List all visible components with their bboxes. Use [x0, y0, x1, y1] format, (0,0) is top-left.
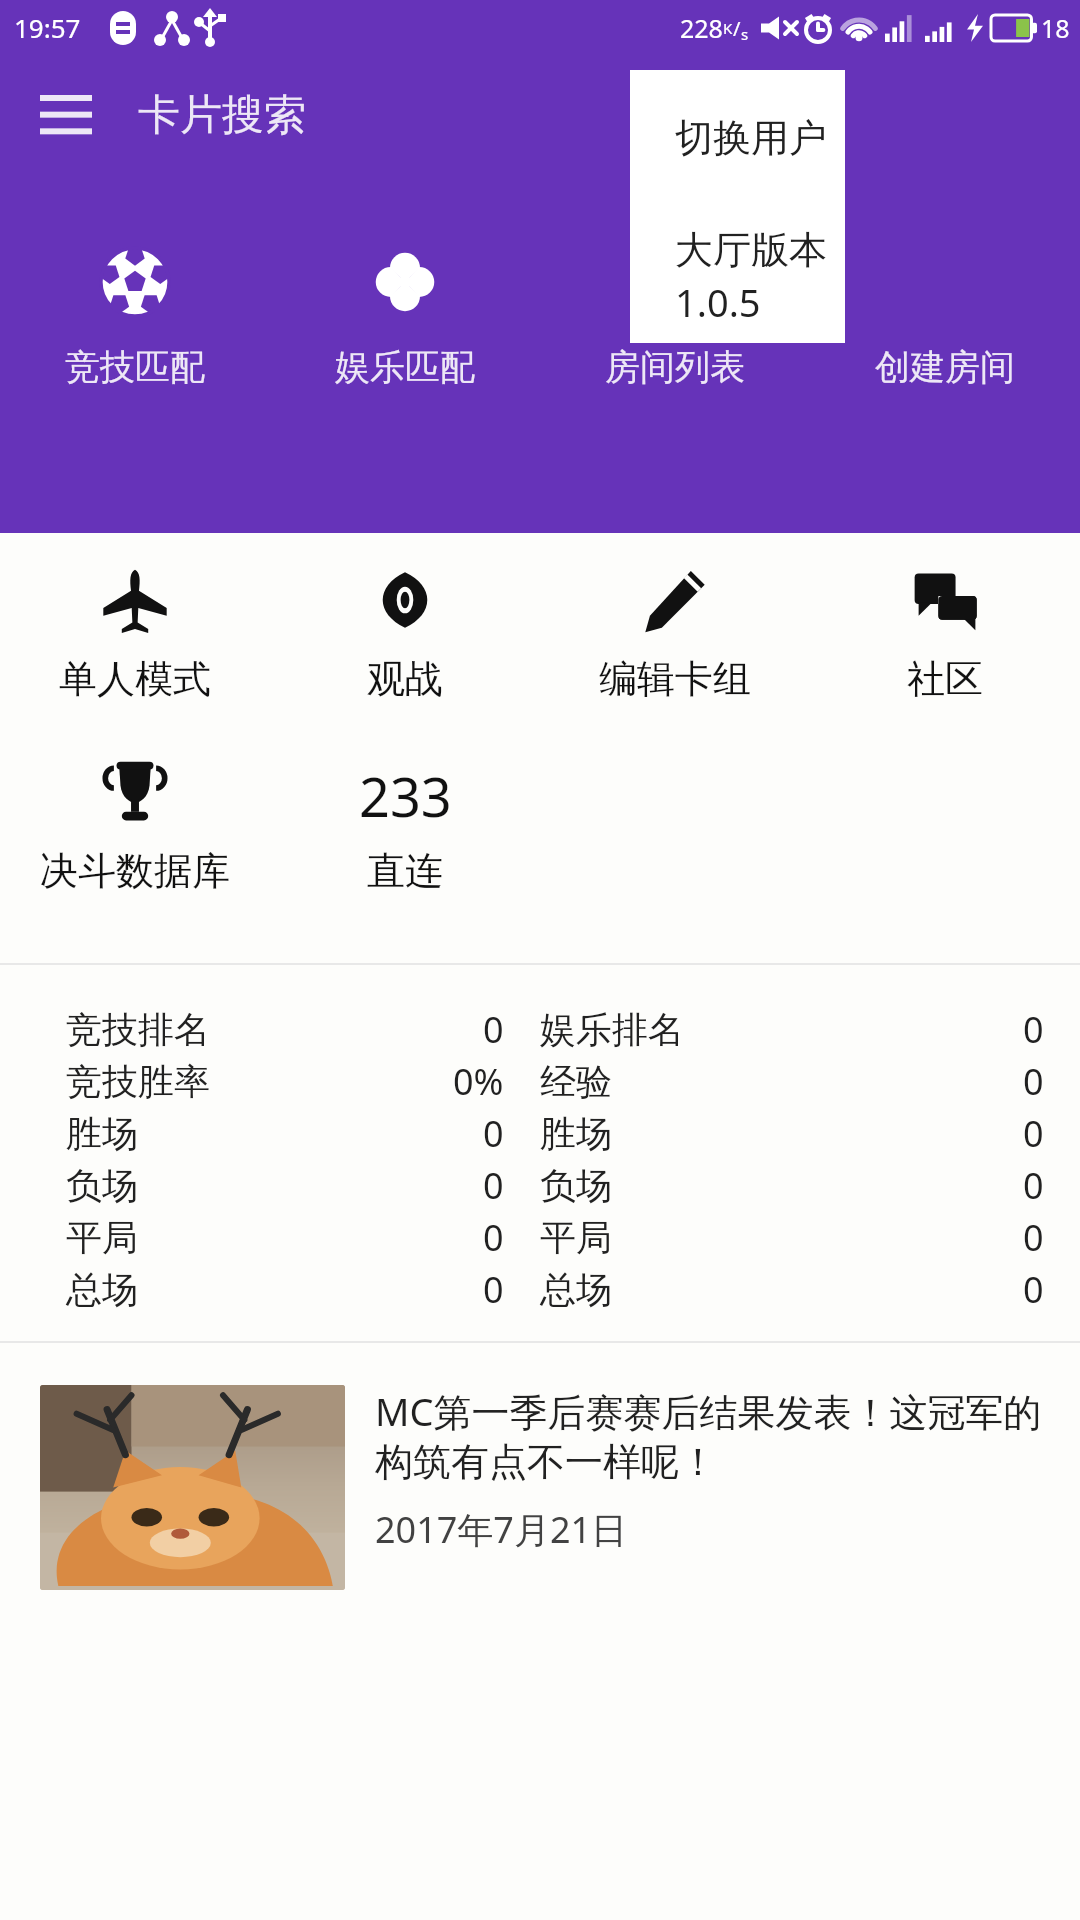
button[interactable]: 切换用户 [630, 70, 845, 206]
staticText: 编辑卡组 [599, 655, 751, 703]
staticText: 胜场 [66, 1111, 138, 1156]
staticText: 0 [483, 1161, 504, 1210]
staticText: 竞技排名 [66, 1007, 210, 1052]
button[interactable]: 编辑卡组 [540, 567, 810, 703]
staticText: 直连 [367, 847, 443, 895]
button[interactable]: 创建房间 [810, 241, 1080, 393]
staticText: 切换用户 [675, 114, 827, 162]
staticText: 娱乐匹配 [335, 345, 475, 389]
staticText: 平局 [540, 1215, 612, 1260]
staticText: 竞技胜率 [66, 1059, 210, 1104]
staticText: 0 [1023, 1265, 1044, 1314]
staticText: MC第一季后赛赛后结果发表！这冠军的构筑有点不一样呢！ [375, 1385, 1052, 1487]
staticText: 竞技匹配 [65, 345, 205, 389]
button[interactable]: 房间列表 [540, 241, 810, 393]
staticText: 负场 [540, 1163, 612, 1208]
button[interactable]: 233 [270, 759, 540, 895]
staticText: 经验 [540, 1059, 612, 1104]
staticText: 19:57 [14, 10, 81, 45]
button[interactable]: Menu [30, 79, 102, 151]
staticText: 卡片搜索 [138, 89, 306, 142]
staticText: s [741, 24, 749, 44]
staticText: 228 [680, 11, 723, 45]
button[interactable]: 竞技匹配 [0, 241, 270, 393]
staticText: / [733, 15, 741, 42]
staticText: 0 [1023, 1005, 1044, 1054]
button[interactable]: 观战 [270, 567, 540, 703]
staticText: 社区 [907, 655, 983, 703]
button[interactable]: MC第一季后赛赛后结果发表！这冠军的构筑有点不一样呢！ [0, 1367, 1080, 1600]
staticText: 233 [359, 759, 452, 825]
staticText: 房间列表 [605, 345, 745, 389]
staticText: K [723, 18, 733, 38]
staticText: 娱乐排名 [540, 1007, 684, 1052]
button[interactable]: 单人模式 [0, 567, 270, 703]
staticText: 大厅版本 1.0.5 [675, 222, 845, 328]
staticText: 0 [1023, 1213, 1044, 1262]
staticText: 18 [1041, 11, 1070, 45]
staticText: 总场 [66, 1267, 138, 1312]
staticText: 0 [483, 1109, 504, 1158]
staticText: 0 [483, 1213, 504, 1262]
staticText: 0 [1023, 1057, 1044, 1106]
staticText: 总场 [540, 1267, 612, 1312]
staticText: 2017年7月21日 [375, 1505, 628, 1554]
staticText: 决斗数据库 [40, 847, 230, 895]
staticText: 胜场 [540, 1111, 612, 1156]
button[interactable]: 决斗数据库 [0, 759, 270, 895]
staticText: 0 [483, 1005, 504, 1054]
staticText: 0 [1023, 1161, 1044, 1210]
button[interactable]: 娱乐匹配 [270, 241, 540, 393]
staticText: 平局 [66, 1215, 138, 1260]
staticText: 单人模式 [59, 655, 211, 703]
staticText: 负场 [66, 1163, 138, 1208]
staticText: 观战 [367, 655, 443, 703]
staticText: 0 [483, 1265, 504, 1314]
staticText: 创建房间 [875, 345, 1015, 389]
button[interactable]: 大厅版本 1.0.5 [630, 206, 845, 343]
staticText: 0% [453, 1057, 504, 1106]
staticText: 0 [1023, 1109, 1044, 1158]
button[interactable]: 社区 [810, 567, 1080, 703]
